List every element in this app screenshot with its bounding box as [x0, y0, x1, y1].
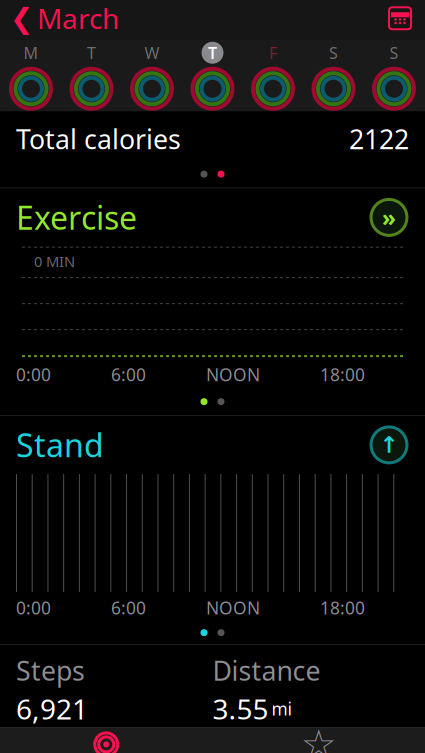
staticText: ☆: [301, 722, 337, 753]
button[interactable]: S: [306, 42, 360, 109]
button[interactable]: ☆: [212, 726, 425, 753]
staticText: Stand: [16, 424, 104, 466]
staticText: 6:00: [111, 596, 146, 619]
staticText: Steps: [16, 653, 85, 688]
staticText: Distance: [212, 653, 320, 688]
staticText: mi: [271, 697, 291, 720]
button[interactable]: S: [367, 42, 421, 109]
staticText: 0:00: [16, 596, 51, 619]
staticText: F: [269, 42, 277, 63]
button[interactable]: W: [125, 42, 179, 109]
staticText: 18:00: [320, 363, 365, 386]
button[interactable]: Total calories: [0, 111, 425, 157]
staticText: 0 MIN: [34, 252, 75, 271]
staticText: NOON: [206, 596, 260, 619]
button[interactable]: Calendar: [375, 1, 425, 35]
button[interactable]: Stand details: [369, 425, 409, 465]
staticText: 0:00: [16, 363, 51, 386]
staticText: Exercise: [16, 196, 137, 239]
staticText: March: [37, 0, 119, 37]
staticText: Total calories: [16, 121, 181, 157]
button[interactable]: Exercise details: [369, 197, 409, 237]
staticText: T: [87, 42, 96, 63]
staticText: 3.55: [212, 690, 268, 727]
staticText: »: [382, 202, 396, 232]
button[interactable]: T: [64, 42, 118, 109]
staticText: 2122: [349, 121, 409, 157]
button[interactable]: History: [0, 726, 212, 753]
staticText: ❮: [10, 2, 33, 34]
staticText: 6,921: [16, 690, 88, 727]
button[interactable]: F: [246, 42, 300, 109]
staticText: M: [23, 42, 38, 63]
staticText: ↑: [379, 432, 398, 458]
staticText: 6:00: [111, 363, 146, 386]
staticText: T: [208, 42, 217, 63]
staticText: 18:00: [320, 596, 365, 619]
staticText: W: [144, 42, 159, 63]
staticText: S: [389, 42, 398, 63]
button[interactable]: M: [4, 42, 58, 109]
button[interactable]: T: [185, 42, 239, 109]
button[interactable]: ❮: [0, 0, 129, 43]
staticText: NOON: [206, 363, 260, 386]
staticText: S: [329, 42, 338, 63]
